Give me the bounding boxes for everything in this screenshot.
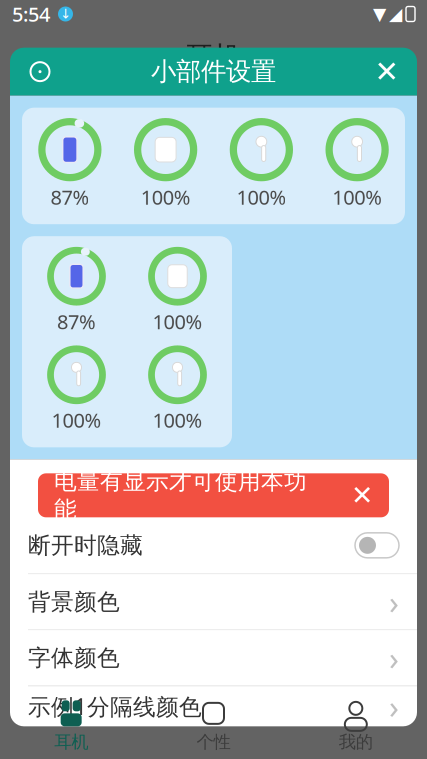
staticText: ‹ — [16, 30, 28, 83]
staticText: 电量有显示才可使用本功能 — [54, 467, 307, 523]
staticText: › — [389, 637, 399, 679]
button[interactable]: Refresh — [18, 50, 62, 94]
staticText: › — [389, 685, 399, 728]
staticText: 87% — [50, 184, 89, 210]
staticText: ✕ — [351, 480, 373, 510]
button[interactable]: Close — [365, 50, 409, 94]
staticText: 耳机 — [54, 731, 88, 753]
staticText: 断开时隐藏 — [28, 531, 143, 559]
staticText: 100% — [332, 184, 382, 210]
staticText: ▼ — [373, 4, 386, 24]
staticText: 100% — [141, 184, 191, 210]
staticText: 100% — [51, 407, 101, 433]
staticText: 示例1分隔线颜色 — [28, 691, 202, 721]
staticText: 100% — [152, 308, 202, 335]
staticText: 5:54 — [12, 1, 50, 27]
staticText: 小部件设置 — [151, 56, 276, 87]
staticText: ↓ — [60, 6, 71, 21]
button[interactable]: 我的 — [285, 693, 427, 759]
button[interactable]: 电量有显示才可使用本功能 — [38, 473, 389, 517]
button[interactable]: Back — [0, 35, 44, 79]
button[interactable]: 断开时隐藏 — [10, 517, 417, 574]
staticText: 字体颜色 — [28, 644, 120, 672]
staticText: ◢ — [389, 4, 402, 24]
staticText: 背景颜色 — [28, 588, 120, 616]
staticText: 个性 — [196, 731, 230, 753]
staticText: 100% — [236, 184, 286, 210]
staticText: › — [389, 581, 399, 623]
staticText: ✕ — [374, 55, 399, 88]
staticText: 87% — [57, 308, 96, 335]
button[interactable]: 背景颜色 — [10, 574, 417, 630]
button[interactable]: 字体颜色 — [10, 630, 417, 686]
button[interactable]: 耳机 — [0, 693, 142, 759]
staticText: 100% — [152, 407, 202, 433]
staticText: 我的 — [339, 731, 373, 753]
button[interactable]: 个性 — [142, 693, 285, 759]
staticText: 耳机 — [185, 40, 241, 74]
